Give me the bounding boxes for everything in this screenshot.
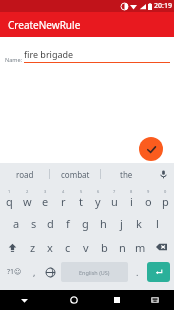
staticText: 20:19 (154, 1, 172, 11)
staticText: 8 (130, 189, 133, 194)
button[interactable]: l (148, 211, 166, 235)
button[interactable]: 2 (18, 187, 36, 211)
staticText: 2 (26, 189, 29, 194)
button[interactable]: 9 (140, 187, 157, 211)
staticText: l (156, 216, 159, 231)
staticText: m (135, 240, 146, 255)
button[interactable]: Enter (147, 262, 170, 282)
button[interactable]: Hide keyboard (0, 290, 49, 310)
button[interactable]: English (US) (61, 262, 128, 282)
staticText: z (30, 240, 36, 255)
button[interactable]: f (59, 211, 76, 235)
staticText: English (US) (79, 269, 110, 276)
button[interactable]: g (76, 211, 94, 235)
button[interactable]: Save rule (139, 137, 163, 161)
button[interactable]: Shift (0, 235, 24, 259)
staticText: . (136, 266, 139, 278)
staticText: e (42, 194, 49, 209)
button[interactable]: 3 (36, 187, 54, 211)
button[interactable]: 1 (0, 187, 18, 211)
button[interactable]: Home (49, 290, 98, 310)
staticText: the (120, 169, 133, 180)
button[interactable]: Change language (42, 262, 59, 282)
button[interactable]: Voice input (152, 163, 174, 185)
staticText: a (13, 216, 20, 231)
staticText: i (130, 194, 133, 209)
staticText: x (47, 240, 53, 255)
staticText: road (16, 169, 34, 180)
button[interactable]: d (42, 211, 59, 235)
button[interactable]: road (0, 163, 50, 185)
button[interactable]: 0 (157, 187, 174, 211)
staticText: Name: (5, 56, 22, 63)
staticText: c (65, 240, 71, 255)
staticText: t (79, 194, 83, 209)
button[interactable]: z (24, 235, 41, 259)
staticText: w (23, 194, 32, 209)
button[interactable]: v (77, 235, 95, 259)
button[interactable]: c (59, 235, 77, 259)
staticText: d (47, 216, 54, 231)
button[interactable]: j (112, 211, 130, 235)
staticText: v (83, 240, 89, 255)
button[interactable]: 5 (72, 187, 89, 211)
staticText: 1 (8, 189, 11, 194)
button[interactable]: the (101, 163, 152, 185)
button[interactable]: Backspace (149, 235, 174, 259)
staticText: g (82, 216, 89, 231)
staticText: 3 (44, 189, 47, 194)
staticText: u (111, 194, 118, 209)
button[interactable]: n (113, 235, 131, 259)
staticText: o (145, 194, 152, 209)
button[interactable]: 6 (89, 187, 106, 211)
staticText: j (120, 216, 123, 231)
staticText: n (119, 240, 126, 255)
button[interactable]: combat (50, 163, 101, 185)
button[interactable]: . (130, 262, 145, 282)
staticText: y (95, 194, 101, 209)
staticText: r (61, 194, 66, 209)
staticText: , (33, 266, 36, 278)
button[interactable]: fire brigade (24, 48, 170, 63)
staticText: 9 (147, 189, 150, 194)
button[interactable]: Recents (98, 290, 136, 310)
staticText: f (66, 216, 70, 231)
button[interactable]: s (25, 211, 42, 235)
staticText: fire brigade (24, 48, 74, 60)
button[interactable]: a (8, 211, 25, 235)
button[interactable]: b (95, 235, 113, 259)
staticText: h (100, 216, 107, 231)
button[interactable]: , (27, 262, 42, 282)
button[interactable]: 8 (123, 187, 140, 211)
staticText: p (162, 194, 169, 209)
button[interactable]: ?1☺ (2, 262, 27, 282)
button[interactable]: h (94, 211, 112, 235)
button[interactable]: 4 (54, 187, 72, 211)
staticText: combat (61, 169, 90, 180)
staticText: 4 (62, 189, 65, 194)
button[interactable]: m (131, 235, 149, 259)
staticText: 6 (97, 189, 100, 194)
button[interactable]: x (41, 235, 59, 259)
staticText: k (136, 216, 142, 231)
staticText: b (101, 240, 108, 255)
button[interactable]: Keyboard active (136, 290, 174, 310)
staticText: 7 (113, 189, 116, 194)
staticText: ?1☺ (7, 267, 22, 277)
staticText: q (6, 194, 13, 209)
staticText: CreateNewRule (8, 18, 81, 32)
staticText: 5 (80, 189, 83, 194)
staticText: 0 (164, 189, 167, 194)
staticText: s (31, 216, 37, 231)
button[interactable]: 7 (106, 187, 123, 211)
button[interactable]: k (130, 211, 148, 235)
